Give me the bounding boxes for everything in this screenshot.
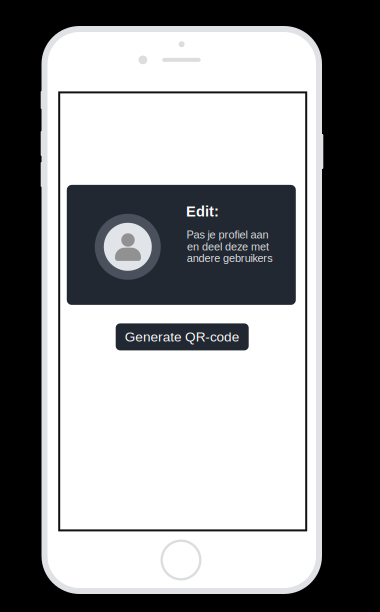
staticText: Pas je profiel aan	[186, 228, 268, 241]
staticText: andere gebruikers	[187, 252, 272, 264]
staticText: Generate QR-code	[125, 329, 240, 344]
staticText: Edit:	[186, 203, 219, 220]
button[interactable]: Edit:	[67, 185, 296, 305]
staticText: en deel deze met	[187, 241, 269, 253]
button[interactable]: Generate QR-code	[116, 323, 249, 350]
